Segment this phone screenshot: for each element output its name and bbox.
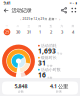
staticText: ›: [59, 16, 60, 22]
staticText: 4: [72, 29, 74, 35]
staticText: 2025年12月29日 星期一: [22, 17, 57, 21]
staticText: 小时: [47, 76, 53, 79]
button[interactable]: More: [69, 6, 80, 15]
staticText: 31: [27, 29, 31, 35]
staticText: 距离: [56, 90, 62, 93]
staticText: 一: [5, 24, 8, 28]
staticText: ‹: [20, 16, 21, 22]
staticText: ≋ ⌁ ▮: [69, 1, 76, 4]
staticText: 日: [71, 24, 74, 28]
staticText: 1: [39, 29, 41, 35]
staticText: 1,693: [38, 47, 56, 55]
staticText: 步数: [18, 90, 24, 93]
button[interactable]: Back: [0, 6, 11, 15]
staticText: 16: [38, 71, 46, 79]
staticText: 3: [61, 29, 63, 35]
staticText: 2: [50, 29, 52, 35]
button[interactable]: Next day: [59, 16, 60, 22]
button[interactable]: 五: [45, 24, 56, 36]
button[interactable]: 一: [1, 24, 12, 36]
button[interactable]: 六: [56, 24, 67, 36]
staticText: 分钟: [47, 64, 53, 67]
button[interactable]: 5,848: [2, 81, 40, 94]
button[interactable]: Previous day: [20, 16, 21, 22]
staticText: 29: [5, 29, 9, 35]
staticText: 三: [27, 24, 30, 28]
staticText: 锻炼时长: [41, 55, 57, 60]
staticText: 五: [49, 24, 52, 28]
staticText: 31: [38, 59, 46, 67]
staticText: 六: [60, 24, 63, 28]
button[interactable]: 四: [34, 24, 45, 36]
staticText: 活动消耗: [41, 43, 57, 48]
staticText: 4.1 公里: [50, 83, 68, 90]
staticText: 30: [16, 29, 20, 35]
staticText: 活动记录: [11, 7, 31, 14]
button[interactable]: 三: [23, 24, 34, 36]
staticText: 9:41: [3, 0, 10, 6]
button[interactable]: 二: [12, 24, 23, 36]
button[interactable]: 日: [67, 24, 78, 36]
button[interactable]: Share: [59, 6, 69, 15]
staticText: 四: [38, 24, 41, 28]
staticText: 活动小时数: [41, 67, 61, 72]
button[interactable]: 4.1 公里: [40, 81, 78, 94]
staticText: 千卡: [57, 52, 63, 55]
staticText: 5,848: [14, 83, 27, 90]
staticText: 二: [16, 24, 19, 28]
